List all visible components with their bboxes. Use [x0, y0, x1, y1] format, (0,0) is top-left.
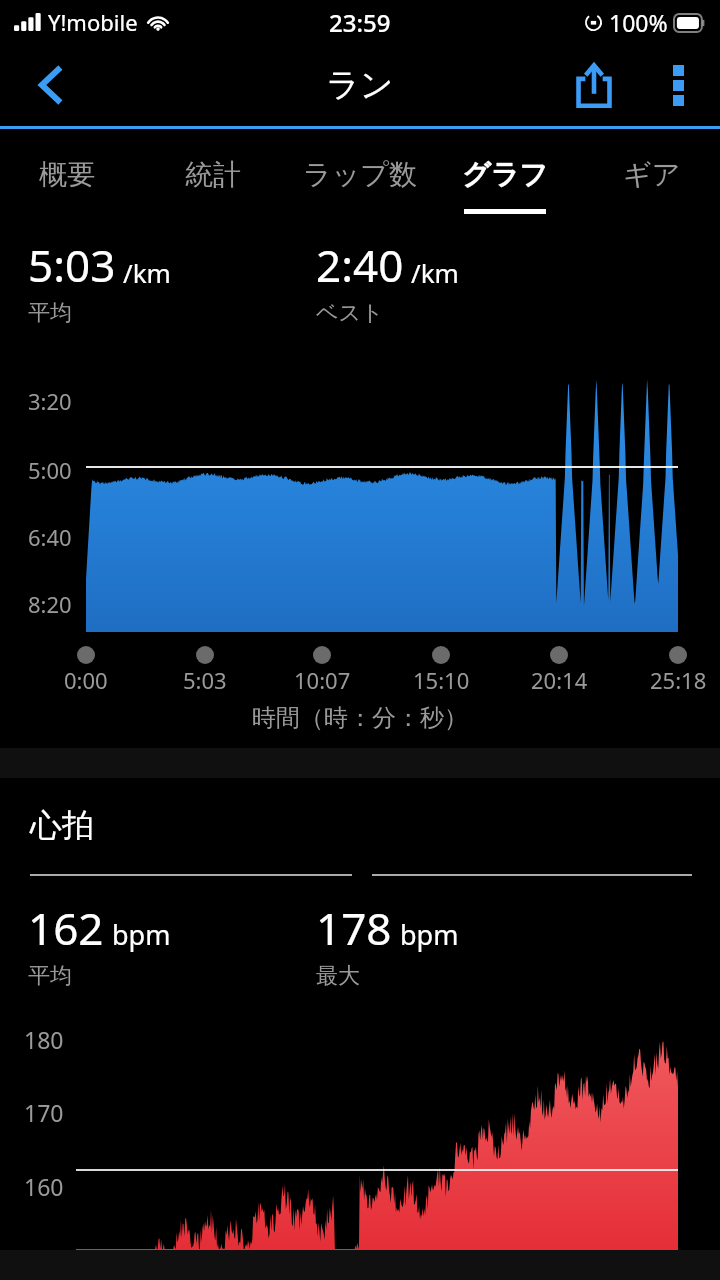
- staticText: 心拍: [30, 805, 94, 845]
- staticText: /km: [411, 255, 459, 290]
- staticText: 3:20: [28, 386, 72, 416]
- staticText: ベスト: [316, 299, 384, 327]
- button[interactable]: ギア: [580, 129, 720, 218]
- button[interactable]: 統計: [141, 129, 285, 218]
- staticText: 5:03: [28, 235, 116, 295]
- staticText: 概要: [39, 157, 95, 192]
- button[interactable]: グラフ: [433, 129, 577, 218]
- staticText: 5:00: [28, 455, 72, 485]
- staticText: 時間（時：分：秒）: [252, 703, 468, 733]
- button[interactable]: More options: [636, 44, 720, 126]
- staticText: 25:18: [650, 665, 707, 695]
- staticText: 0:00: [64, 665, 108, 695]
- staticText: 2:40: [316, 235, 404, 295]
- staticText: 160: [24, 1171, 64, 1202]
- staticText: 15:10: [413, 665, 470, 695]
- staticText: グラフ: [462, 157, 548, 192]
- staticText: 100%: [609, 7, 668, 38]
- staticText: 20:14: [531, 665, 588, 695]
- staticText: /km: [123, 255, 171, 290]
- staticText: 180: [24, 1024, 64, 1055]
- staticText: ラップ数: [303, 157, 417, 192]
- staticText: 8:20: [28, 589, 72, 619]
- staticText: 平均: [28, 962, 72, 990]
- staticText: 平均: [28, 299, 72, 327]
- staticText: 5:03: [183, 665, 227, 695]
- staticText: 最大: [316, 962, 360, 990]
- staticText: 10:07: [294, 665, 351, 695]
- staticText: Y!mobile: [48, 7, 138, 37]
- staticText: 統計: [185, 157, 241, 192]
- staticText: 6:40: [28, 522, 72, 552]
- staticText: 178: [316, 898, 392, 958]
- button[interactable]: Back: [0, 44, 104, 126]
- staticText: ギア: [623, 157, 681, 192]
- button[interactable]: Share: [552, 44, 636, 126]
- button[interactable]: 概要: [0, 129, 139, 218]
- staticText: 162: [28, 898, 104, 958]
- staticText: ラン: [326, 64, 394, 106]
- staticText: 170: [24, 1097, 64, 1128]
- staticText: bpm: [400, 916, 459, 953]
- button[interactable]: ラップ数: [288, 129, 432, 218]
- staticText: bpm: [112, 916, 171, 953]
- staticText: 23:59: [329, 6, 391, 39]
